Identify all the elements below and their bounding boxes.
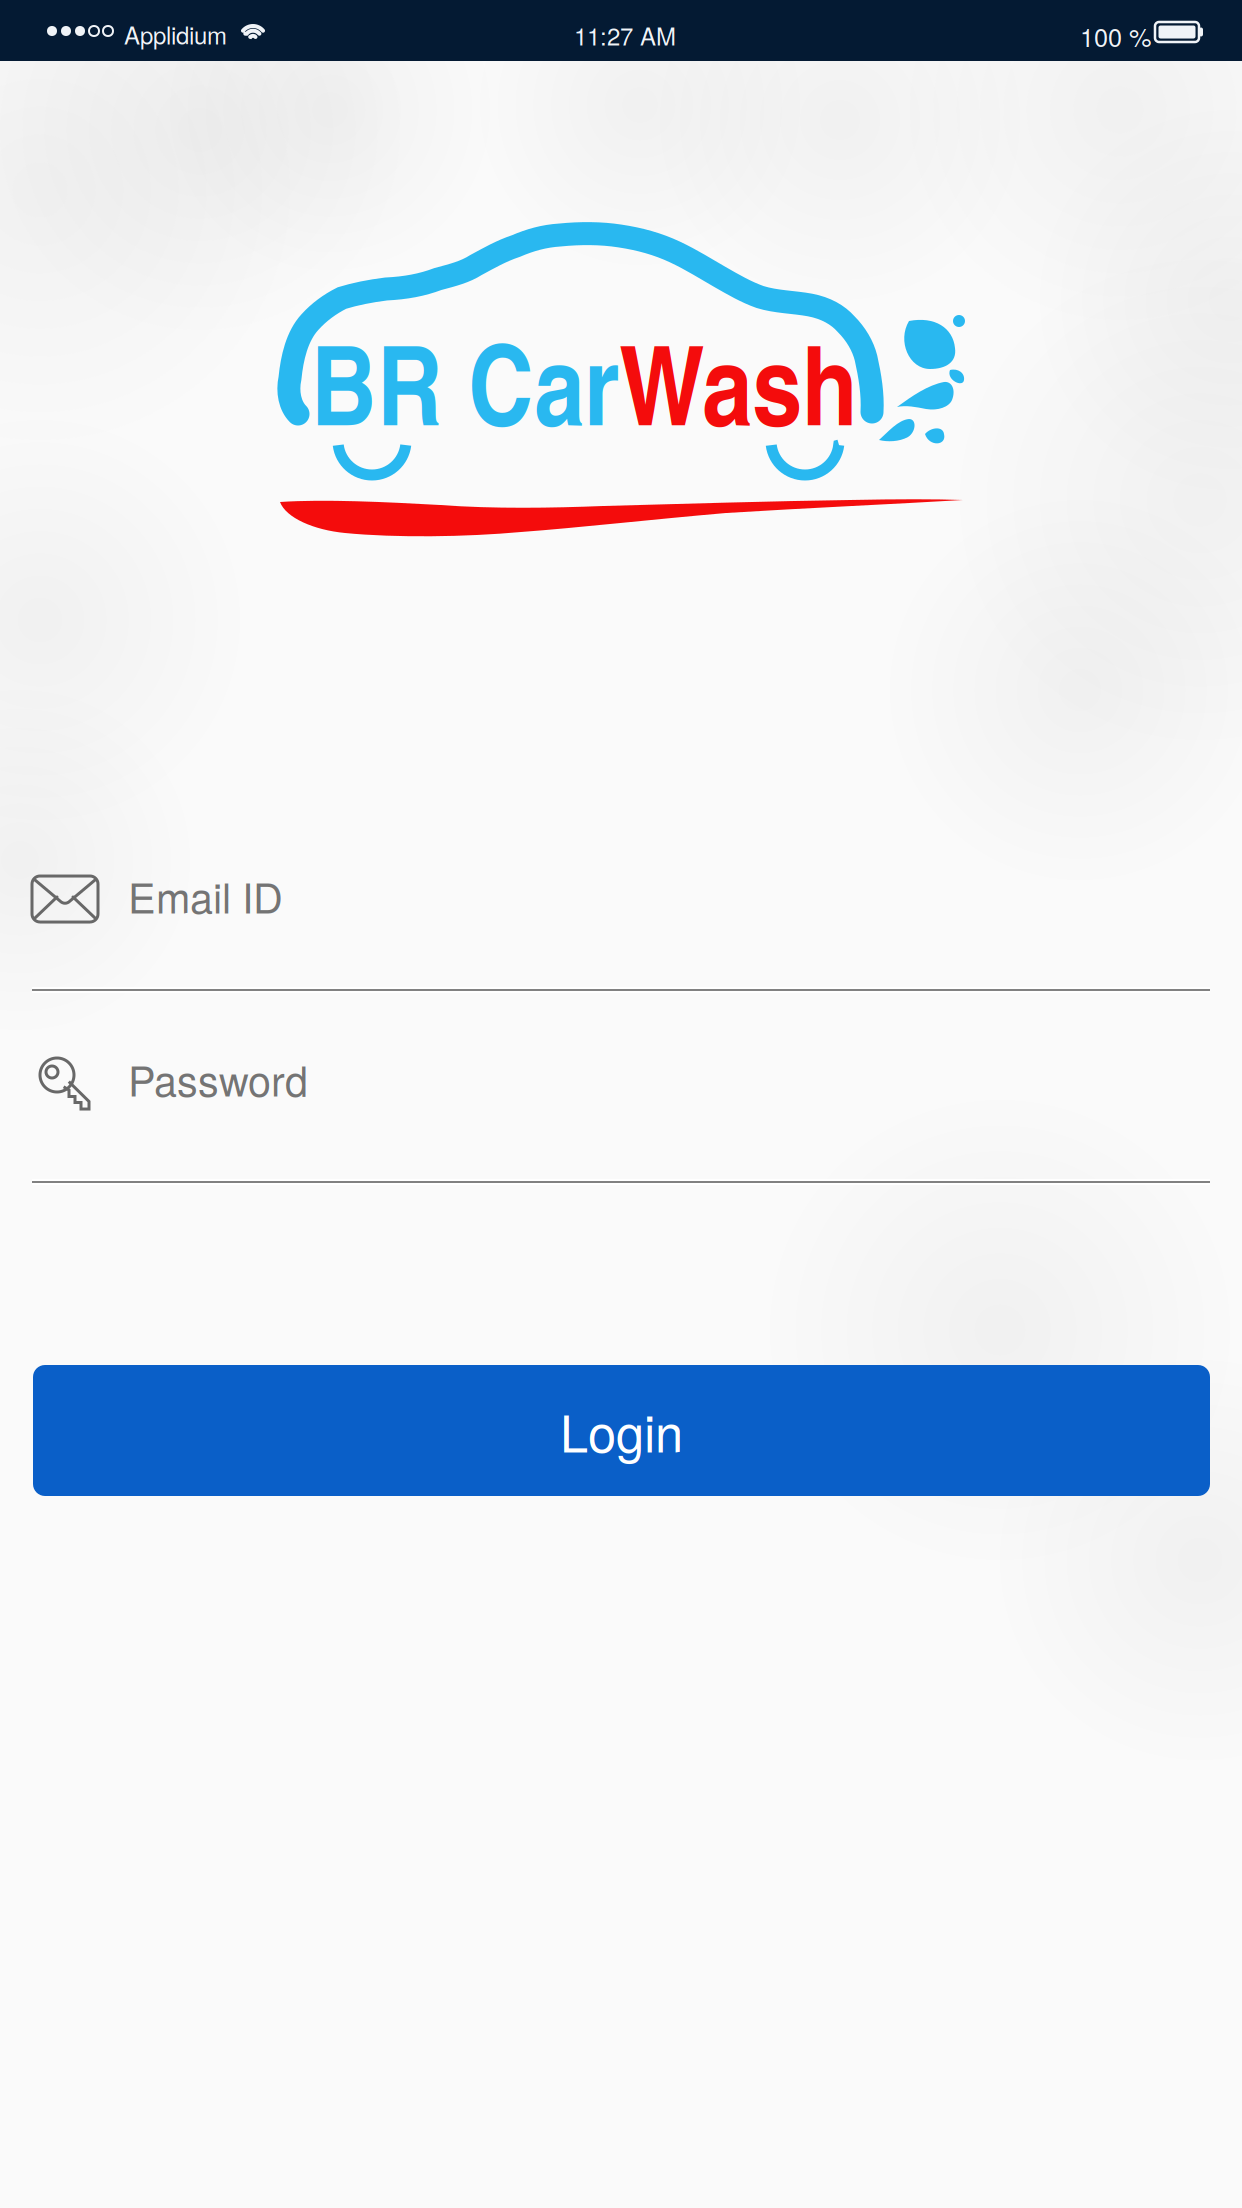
staticText: Email ID — [128, 866, 283, 925]
staticText: Applidium — [124, 17, 227, 51]
staticText: Wash — [619, 303, 857, 459]
button[interactable]: Password — [32, 1056, 1210, 1186]
button[interactable]: Email ID — [32, 864, 1210, 994]
staticText: Login — [560, 1394, 683, 1467]
button[interactable]: Login — [33, 1365, 1210, 1496]
staticText: Password — [128, 1049, 308, 1108]
staticText: 11:27 AM — [574, 18, 676, 52]
staticText: BR Car — [311, 303, 619, 459]
staticText: 100 % — [1080, 18, 1152, 54]
